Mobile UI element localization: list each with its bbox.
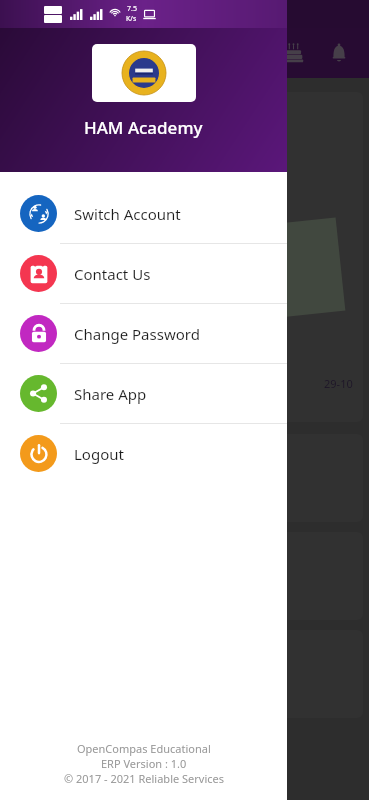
staticText: © 2017 - 2021 Reliable Services — [64, 771, 224, 786]
button[interactable]: Fee — [6, 630, 363, 718]
button[interactable]: Switch Account — [0, 184, 287, 244]
staticText: Contact Us — [74, 264, 151, 284]
staticText: 29-10 — [324, 376, 353, 391]
staticText: OpenCompas Educational — [77, 741, 211, 756]
staticText: Change Password — [74, 324, 200, 344]
staticText: 7.5 — [127, 4, 137, 14]
button[interactable]: Notifications — [321, 35, 357, 71]
button[interactable]: Contact Us — [0, 244, 287, 304]
button[interactable]: Change Password — [0, 304, 287, 364]
staticText: Logout — [74, 444, 124, 464]
button[interactable]: Classwork — [6, 532, 363, 620]
staticText: K/s — [126, 14, 137, 24]
staticText: ERP Version : 1.0 — [101, 756, 187, 771]
staticText: Share App — [74, 384, 147, 404]
button[interactable]: Share App — [0, 364, 287, 424]
staticText: HAM Academy — [84, 116, 203, 139]
button[interactable]: Birthdays — [275, 35, 311, 71]
button[interactable]: · · · · · · — [6, 92, 363, 422]
button[interactable]: Examination — [6, 434, 363, 522]
staticText: Switch Account — [74, 204, 181, 224]
button[interactable]: Logout — [0, 424, 287, 483]
